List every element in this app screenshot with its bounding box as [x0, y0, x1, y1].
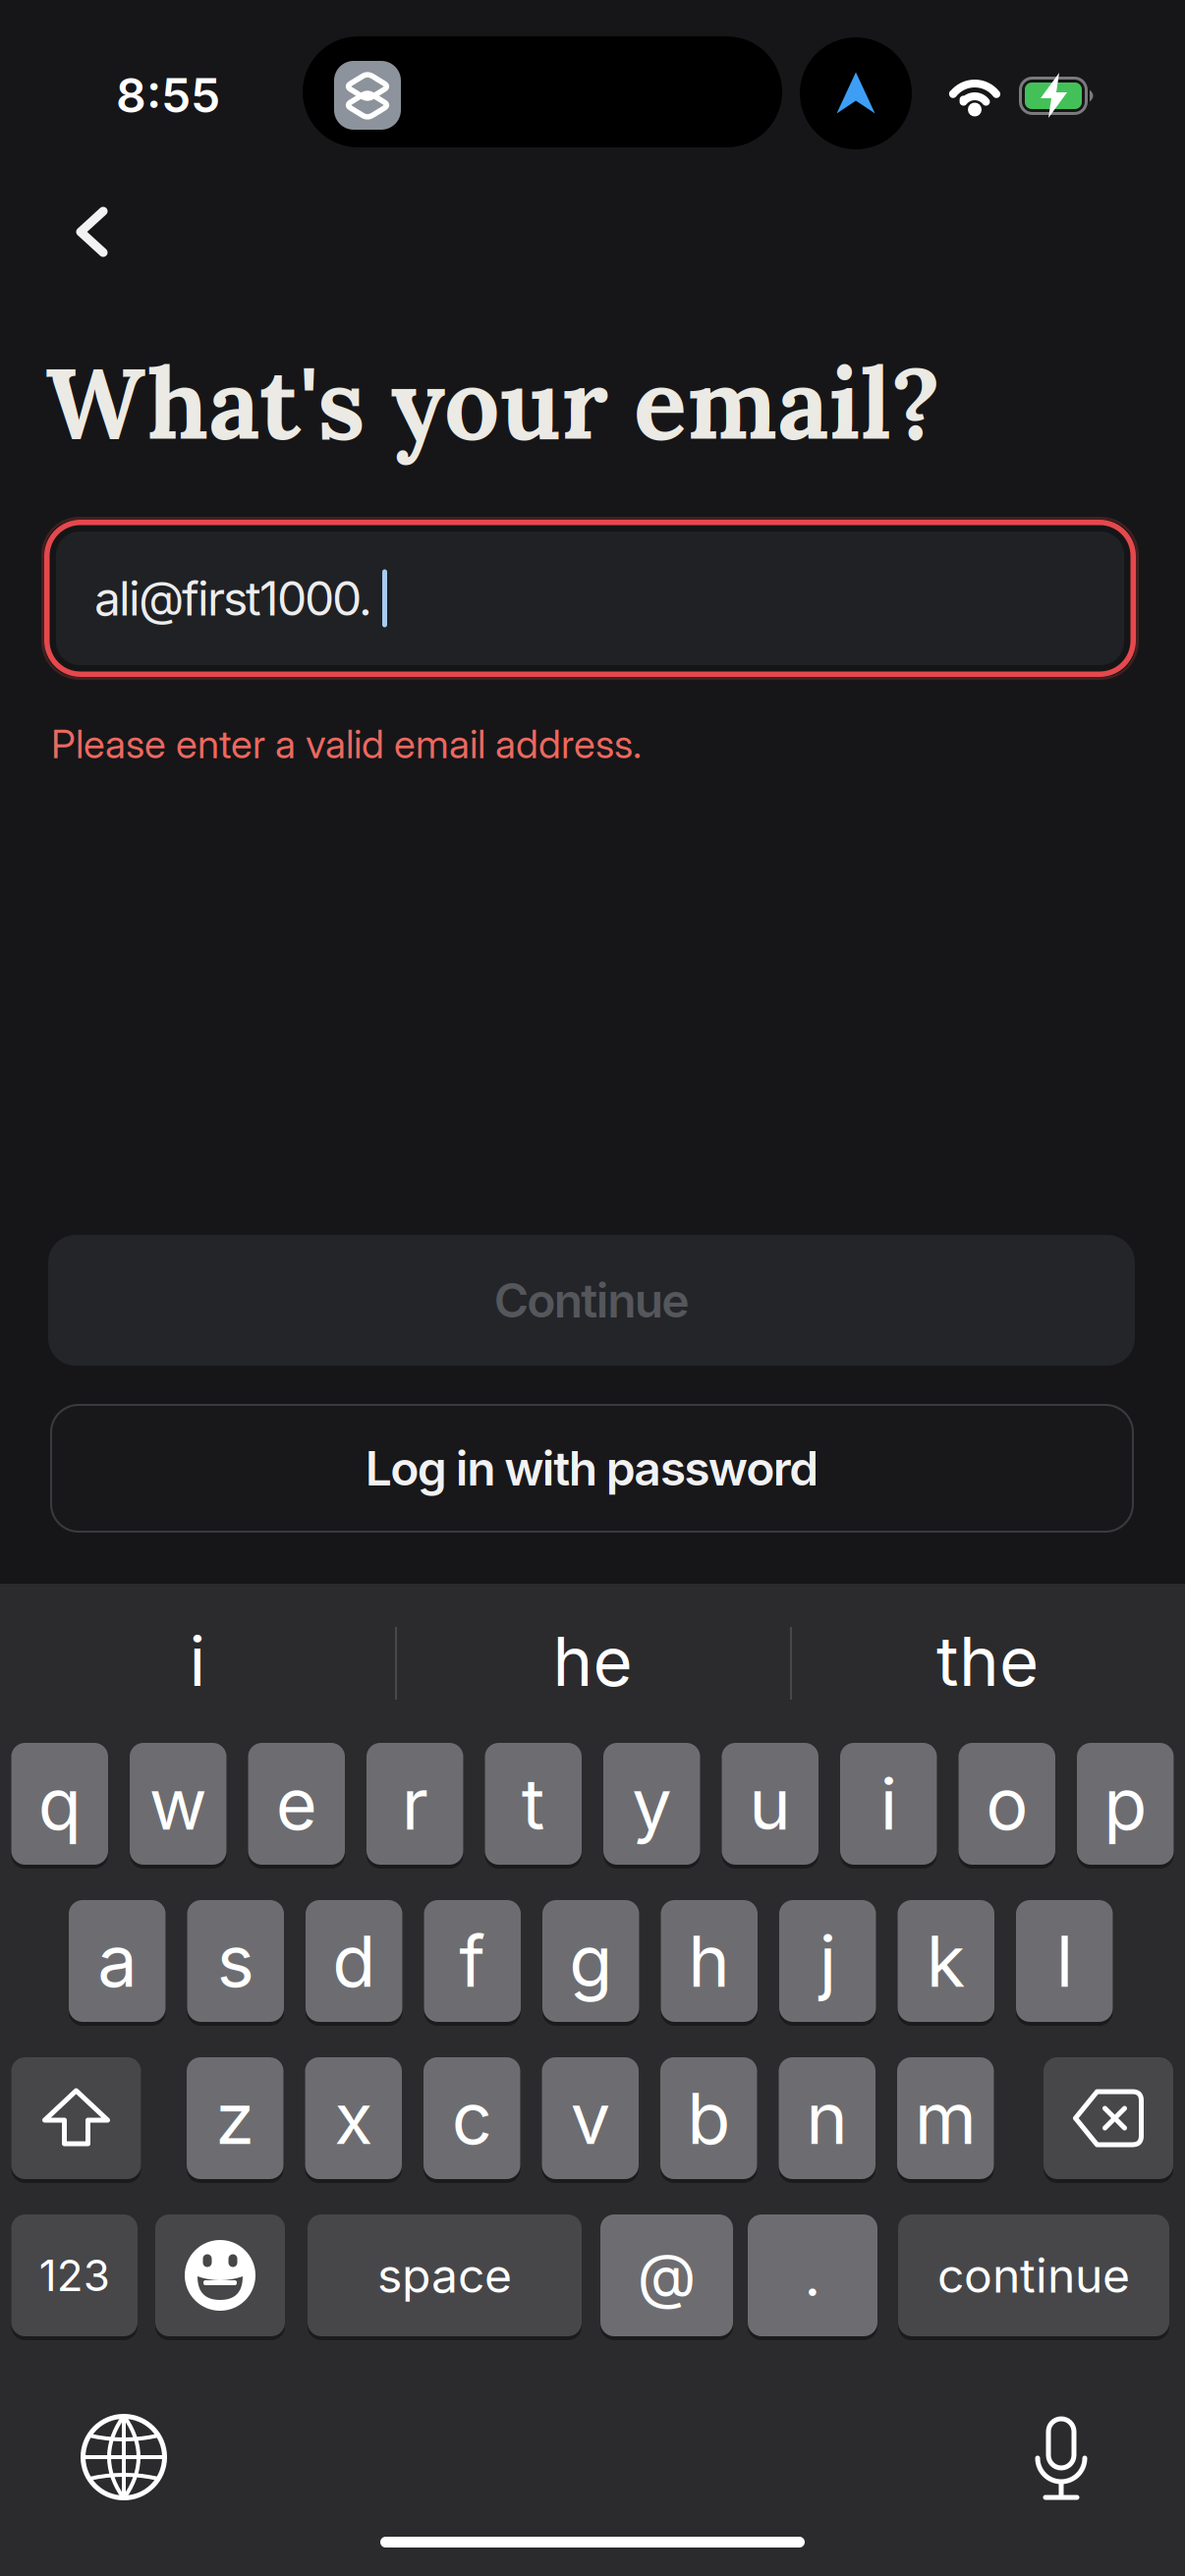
button[interactable]: the — [801, 1593, 1174, 1730]
button[interactable]: u — [722, 1743, 818, 1865]
button[interactable]: s — [187, 1900, 284, 2022]
staticText: . — [804, 2241, 821, 2310]
staticText: w — [149, 1761, 207, 1847]
button[interactable]: b — [660, 2057, 757, 2179]
button[interactable]: m — [897, 2057, 994, 2179]
button[interactable]: j — [779, 1900, 876, 2022]
button[interactable]: h — [661, 1900, 758, 2022]
button[interactable]: space — [308, 2214, 582, 2336]
staticText: m — [915, 2075, 976, 2161]
staticText: e — [276, 1761, 317, 1847]
button[interactable]: @ — [600, 2214, 733, 2336]
staticText: 123 — [39, 2249, 110, 2302]
button[interactable]: Next keyboard — [80, 2413, 168, 2501]
button[interactable]: l — [1016, 1900, 1113, 2022]
staticText: s — [217, 1918, 254, 2004]
button[interactable]: q — [11, 1743, 108, 1865]
button[interactable]: . — [748, 2214, 877, 2336]
staticText: he — [553, 1620, 632, 1702]
button[interactable]: o — [959, 1743, 1055, 1865]
staticText: continue — [937, 2247, 1130, 2304]
button[interactable]: continue — [898, 2214, 1169, 2336]
staticText: o — [986, 1761, 1028, 1847]
staticText: space — [377, 2247, 512, 2304]
staticText: a — [97, 1918, 137, 2004]
staticText: u — [749, 1761, 791, 1847]
button[interactable]: d — [306, 1900, 402, 2022]
staticText: r — [402, 1761, 428, 1847]
button[interactable]: a — [69, 1900, 166, 2022]
button[interactable]: i — [840, 1743, 937, 1865]
button[interactable]: he — [406, 1593, 779, 1730]
staticText: @ — [637, 2239, 696, 2312]
button[interactable]: Shift — [11, 2057, 141, 2179]
staticText: Continue — [494, 1272, 689, 1329]
button[interactable]: n — [779, 2057, 875, 2179]
staticText: f — [459, 1918, 486, 2004]
staticText: Please enter a valid email address. — [51, 720, 642, 768]
staticText: the — [936, 1620, 1039, 1702]
staticText: j — [819, 1918, 836, 2004]
button[interactable]: Continue — [48, 1235, 1135, 1366]
button[interactable]: Delete — [1044, 2057, 1173, 2179]
staticText: 8:55 — [116, 67, 220, 124]
button[interactable]: i — [11, 1593, 384, 1730]
staticText: c — [452, 2075, 492, 2161]
button[interactable]: e — [248, 1743, 345, 1865]
button[interactable]: p — [1077, 1743, 1174, 1865]
staticText: ali@first1000. — [94, 570, 372, 627]
button[interactable]: y — [603, 1743, 700, 1865]
button[interactable]: r — [367, 1743, 463, 1865]
button[interactable]: t — [485, 1743, 582, 1865]
button[interactable]: g — [542, 1900, 639, 2022]
button[interactable]: Back — [78, 208, 107, 255]
button[interactable]: Emoji — [155, 2214, 285, 2336]
button[interactable]: Dictate — [1034, 2415, 1089, 2505]
button[interactable]: x — [305, 2057, 402, 2179]
staticText: y — [632, 1761, 671, 1847]
button[interactable]: Email, ali@first1000. — [44, 520, 1136, 677]
button[interactable]: Log in with password — [50, 1404, 1134, 1533]
staticText: v — [571, 2075, 610, 2161]
staticText: i — [189, 1620, 206, 1702]
staticText: h — [688, 1918, 730, 2004]
button[interactable]: k — [898, 1900, 994, 2022]
staticText: b — [687, 2075, 730, 2161]
button[interactable]: w — [130, 1743, 226, 1865]
staticText: n — [806, 2075, 848, 2161]
button[interactable]: f — [424, 1900, 521, 2022]
button[interactable]: z — [187, 2057, 283, 2179]
staticText: l — [1056, 1918, 1073, 2004]
staticText: g — [569, 1918, 612, 2004]
button[interactable]: c — [423, 2057, 520, 2179]
staticText: z — [215, 2075, 255, 2161]
staticText: q — [38, 1761, 81, 1847]
staticText: What's your email? — [45, 340, 940, 466]
staticText: x — [334, 2075, 373, 2161]
staticText: k — [926, 1918, 966, 2004]
staticText: i — [880, 1761, 897, 1847]
staticText: p — [1104, 1761, 1147, 1847]
staticText: t — [522, 1761, 545, 1847]
staticText: Log in with password — [365, 1440, 819, 1497]
button[interactable]: v — [542, 2057, 639, 2179]
button[interactable]: 123 — [11, 2214, 138, 2336]
staticText: d — [332, 1918, 376, 2004]
